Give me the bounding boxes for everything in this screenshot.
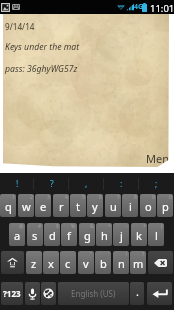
staticText: q [5,199,12,214]
staticText: 4G [134,2,144,12]
staticText: x [48,256,54,271]
button[interactable]: c [60,251,76,274]
staticText: r [59,199,64,214]
button[interactable]: e [35,194,51,217]
button[interactable]: g [79,223,95,246]
staticText: t [76,199,80,214]
staticText: pass: 36ghyWG57z [5,63,78,75]
button[interactable]: ?123 [1,282,23,305]
staticText: + [143,223,146,230]
staticText: ; [155,178,158,190]
button[interactable]: w [18,194,34,217]
staticText: English (US) [71,288,116,299]
staticText: d [49,228,56,243]
staticText: ! [16,178,19,190]
staticText: u [110,199,117,214]
button[interactable]: f [61,223,77,246]
staticText: y [92,199,98,214]
staticText: 3 [47,194,50,201]
button[interactable]: i [122,194,138,217]
button[interactable]: Delete [148,251,173,274]
button[interactable]: Change keyboard [41,282,56,305]
button[interactable]: , [69,173,104,194]
staticText: 0 [169,194,172,201]
staticText: . [136,284,139,299]
staticText: i [129,199,132,214]
button[interactable]: English (US) [58,282,129,305]
staticText: 9/14/14 [5,21,35,32]
button[interactable]: a [9,223,25,246]
staticText: c [65,256,71,271]
button[interactable]: h [96,223,112,246]
staticText: e [40,199,47,214]
button[interactable]: j [113,223,129,246]
staticText: f [67,228,71,243]
staticText: ? [142,251,145,258]
staticText: * [108,223,111,230]
staticText: 7 [117,194,120,201]
button[interactable]: Voice input [25,282,40,305]
button[interactable]: n [113,251,129,274]
staticText: 2 [30,194,33,201]
button[interactable]: m [130,251,146,274]
button[interactable]: b [95,251,111,274]
button[interactable]: z [26,251,42,274]
staticText: 4 [65,194,68,201]
staticText: 11:01 [150,2,174,15]
staticText: o [145,199,152,214]
staticText: 9 [152,194,155,201]
button[interactable]: v [78,251,94,274]
button[interactable]: s [27,223,43,246]
staticText: j [120,228,123,243]
staticText: a [14,228,21,243]
staticText: Menu [146,151,169,166]
staticText: : [120,178,123,190]
staticText: 8 [134,194,137,201]
button[interactable]: : [104,173,139,194]
button[interactable]: r [53,194,69,217]
button[interactable]: p [157,194,173,217]
staticText: ! [126,251,128,258]
button[interactable]: u [105,194,121,217]
staticText: n [118,256,125,271]
button[interactable]: x [43,251,59,274]
staticText: p [162,199,169,214]
button[interactable]: Enter [147,282,172,305]
button[interactable]: . [130,282,144,305]
button[interactable]: l [148,223,164,246]
staticText: & [90,223,94,230]
staticText: ? [50,178,54,190]
staticText: 1 [12,194,15,201]
staticText: h [101,228,108,243]
button[interactable]: t [70,194,86,217]
staticText: s [32,228,38,243]
staticText: v [83,256,89,271]
staticText: ?123 [3,288,21,299]
staticText: g [84,228,91,243]
staticText: z [31,256,37,271]
staticText: , [85,178,88,190]
staticText: " [90,251,93,258]
button[interactable]: ; [139,173,174,194]
button[interactable]: d [44,223,60,246]
button[interactable]: k [131,223,147,246]
staticText: ' [108,251,110,258]
staticText: l [155,228,158,243]
staticText: 6 [99,194,102,201]
staticText: - [126,223,128,230]
button[interactable]: Shift [1,251,24,274]
button[interactable]: o [140,194,156,217]
button[interactable]: q [0,194,16,217]
button[interactable]: Menu [146,151,169,166]
staticText: % [71,223,76,230]
staticText: ( [161,223,163,230]
button[interactable]: ! [0,173,34,194]
staticText: @ [19,223,24,230]
staticText: 5 [82,194,85,201]
staticText: b [100,256,107,271]
staticText: # [38,223,42,230]
staticText: Keys under the mat [5,41,80,53]
staticText: $ [56,223,59,230]
button[interactable]: y [87,194,103,217]
button[interactable]: ? [34,173,69,194]
